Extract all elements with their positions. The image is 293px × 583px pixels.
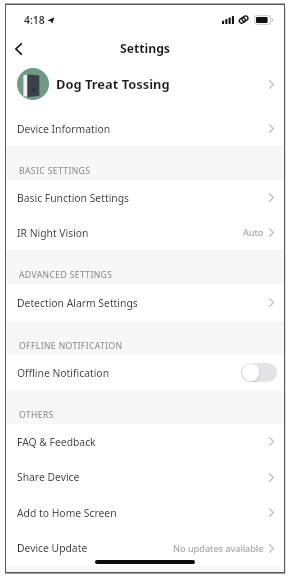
staticText: Add to Home Screen	[17, 506, 117, 520]
button[interactable]: Dog Treat Tossing	[6, 62, 284, 111]
button[interactable]: Add to Home Screen	[6, 495, 284, 530]
staticText: 4:18	[24, 13, 45, 27]
staticText: Share Device	[17, 470, 80, 484]
staticText: BASIC SETTINGS	[19, 165, 91, 177]
staticText: Detection Alarm Settings	[17, 296, 138, 310]
staticText: Dog Treat Tossing	[56, 75, 170, 93]
staticText: IR Night Vision	[17, 226, 89, 240]
staticText: OTHERS	[19, 409, 54, 421]
staticText: Basic Function Settings	[17, 191, 130, 205]
button[interactable]: Basic Function Settings	[6, 180, 284, 215]
button[interactable]: IR Night Vision	[6, 215, 284, 250]
staticText: Device Information	[17, 122, 111, 136]
button[interactable]: Back	[11, 38, 25, 60]
button[interactable]: FAQ & Feedback	[6, 424, 284, 459]
staticText: OFFLINE NOTIFICATION	[19, 340, 123, 352]
button[interactable]: Offline Notification	[6, 355, 284, 390]
button[interactable]: Detection Alarm Settings	[6, 284, 284, 321]
staticText: FAQ & Feedback	[17, 435, 96, 449]
staticText: No updates available	[173, 542, 264, 555]
staticText: Device Update	[17, 541, 88, 555]
staticText: Auto	[243, 226, 264, 239]
button[interactable]: Share Device	[6, 459, 284, 495]
staticText: Offline Notification	[17, 366, 110, 380]
staticText: ADVANCED SETTINGS	[19, 269, 113, 281]
staticText: Settings	[120, 40, 170, 57]
button[interactable]: Offline Notification toggle, off	[241, 363, 277, 382]
button[interactable]: Device Update	[6, 530, 284, 566]
button[interactable]: Device Information	[6, 111, 284, 146]
